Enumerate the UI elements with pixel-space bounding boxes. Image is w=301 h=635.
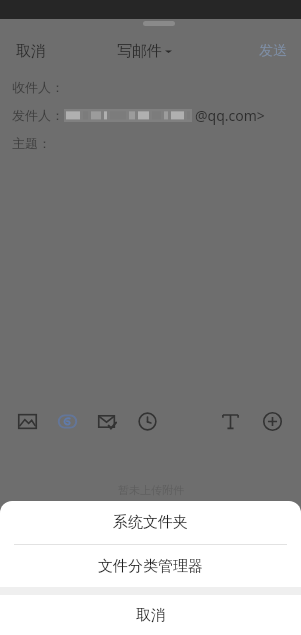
staticText: @qq.com> — [195, 106, 265, 125]
staticText: 主题： — [12, 135, 51, 151]
button[interactable]: Insert image — [10, 404, 44, 438]
button[interactable]: 文件分类管理器 — [0, 545, 301, 587]
staticText: 发件人： — [12, 107, 64, 123]
button[interactable]: 系统文件夹 — [0, 501, 301, 544]
button[interactable]: 发送 — [253, 36, 293, 66]
staticText: 发送 — [259, 42, 287, 60]
staticText: 系统文件夹 — [113, 513, 188, 532]
button[interactable]: 写邮件 — [111, 36, 178, 67]
button[interactable]: Schedule send — [130, 404, 164, 438]
staticText: 取消 — [16, 42, 46, 61]
staticText: 文件分类管理器 — [98, 557, 203, 576]
staticText: 暂未上传附件 — [118, 483, 184, 497]
button[interactable]: 取消 — [8, 36, 54, 67]
button[interactable]: 主题： — [0, 129, 301, 157]
staticText: 取消 — [136, 606, 166, 625]
button[interactable]: 发件人： — [0, 101, 301, 129]
button[interactable]: Text format — [213, 404, 247, 438]
button[interactable]: Mail attachment — [90, 404, 124, 438]
button[interactable]: 收件人： — [0, 73, 301, 101]
button[interactable]: 取消 — [0, 595, 301, 635]
staticText: 收件人： — [12, 79, 64, 95]
button[interactable]: Cloud drive — [50, 404, 84, 438]
button[interactable]: More options — [255, 404, 289, 438]
staticText: 写邮件 — [117, 42, 162, 61]
